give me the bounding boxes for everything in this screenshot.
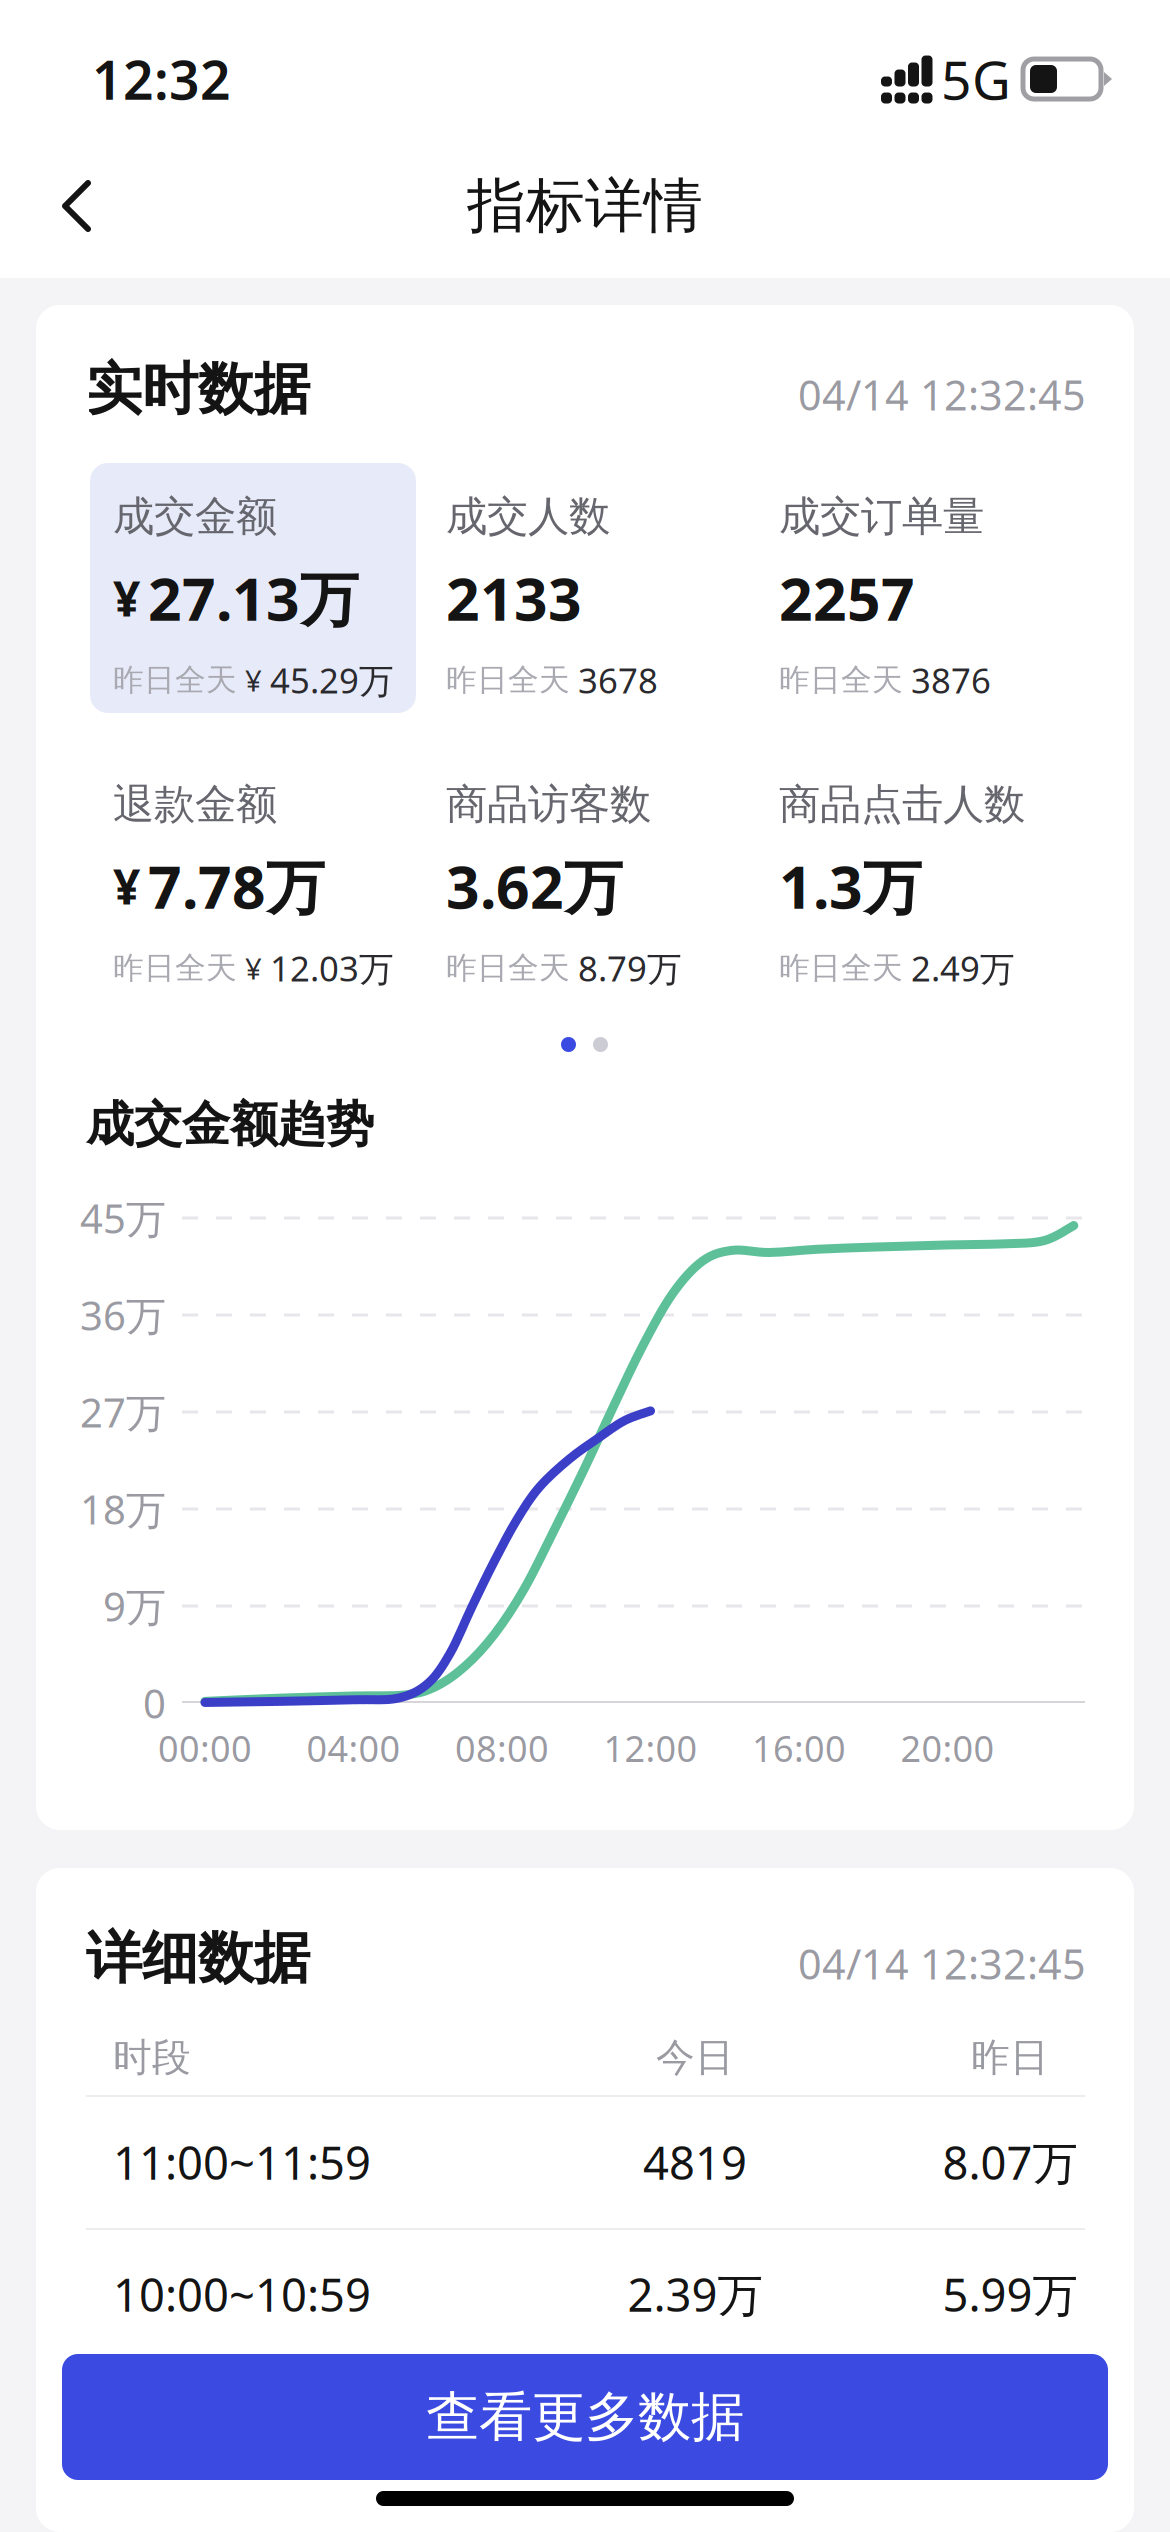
staticText: 27万 — [80, 1385, 166, 1438]
staticText: 实时数据 — [86, 355, 310, 424]
staticText: 00:00 — [158, 1724, 252, 1772]
staticText: 04:00 — [306, 1724, 400, 1772]
staticText: 16:00 — [752, 1724, 846, 1772]
button[interactable]: Page 2 — [587, 1031, 614, 1058]
staticText: 2133 — [446, 559, 582, 637]
staticText: ¥ — [113, 566, 140, 630]
staticText: 成交金额 — [113, 491, 277, 542]
staticText: 45万 — [80, 1191, 166, 1244]
button[interactable]: 查看更多数据 — [62, 2354, 1108, 2480]
button[interactable]: Page 1 — [555, 1031, 582, 1058]
staticText: 7.78万 — [148, 847, 325, 925]
staticText: 今日 — [656, 2034, 734, 2081]
staticText: 10:00~10:59 — [113, 2264, 371, 2324]
staticText: 4819 — [643, 2132, 747, 2192]
staticText: 昨日 — [971, 2034, 1049, 2081]
staticText: ¥ — [113, 854, 140, 918]
staticText: 8.79万 — [578, 945, 682, 991]
staticText: 昨日全天 — [113, 949, 237, 987]
staticText: ¥ — [237, 660, 270, 699]
staticText: 成交金额趋势 — [86, 1095, 374, 1154]
staticText: 2257 — [779, 559, 915, 637]
staticText: ¥ — [237, 948, 270, 987]
staticText: 2.39万 — [627, 2264, 762, 2324]
staticText: 5.99万 — [942, 2264, 1077, 2324]
staticText: 04/14 12:32:45 — [798, 1936, 1086, 1991]
staticText: 昨日全天 — [779, 949, 903, 987]
staticText: 45.29万 — [270, 657, 394, 703]
staticText: 12.03万 — [270, 945, 394, 991]
staticText: 0 — [143, 1676, 166, 1729]
staticText: 12:00 — [603, 1724, 697, 1772]
staticText: 3678 — [578, 657, 658, 703]
staticText: 3.62万 — [446, 847, 623, 925]
staticText: 查看更多数据 — [426, 2384, 744, 2450]
staticText: 12:32 — [92, 44, 231, 114]
staticText: 20:00 — [900, 1724, 994, 1772]
staticText: 11:00~11:59 — [113, 2132, 371, 2192]
staticText: 指标详情 — [467, 170, 703, 242]
staticText: 昨日全天 — [446, 949, 570, 987]
staticText: 昨日全天 — [779, 661, 903, 699]
staticText: 9万 — [103, 1579, 166, 1632]
staticText: 商品点击人数 — [779, 779, 1025, 830]
staticText: 昨日全天 — [446, 661, 570, 699]
staticText: 8.07万 — [942, 2132, 1077, 2192]
staticText — [140, 866, 148, 905]
staticText: 详细数据 — [86, 1924, 310, 1993]
staticText: 27.13万 — [148, 559, 359, 637]
staticText: 时段 — [113, 2034, 191, 2081]
staticText: 1.3万 — [779, 847, 922, 925]
staticText: 昨日全天 — [113, 661, 237, 699]
staticText: 3876 — [911, 657, 991, 703]
staticText: 18万 — [80, 1482, 166, 1535]
staticText: 36万 — [80, 1288, 166, 1341]
staticText: 成交人数 — [446, 491, 610, 542]
staticText: 5G — [941, 44, 1011, 114]
staticText: 08:00 — [455, 1724, 549, 1772]
button[interactable]: Back — [0, 152, 128, 260]
staticText: 商品访客数 — [446, 779, 651, 830]
staticText: 退款金额 — [113, 779, 277, 830]
staticText: 2.49万 — [911, 945, 1015, 991]
staticText: 成交订单量 — [779, 491, 984, 542]
staticText: 04/14 12:32:45 — [798, 367, 1086, 422]
